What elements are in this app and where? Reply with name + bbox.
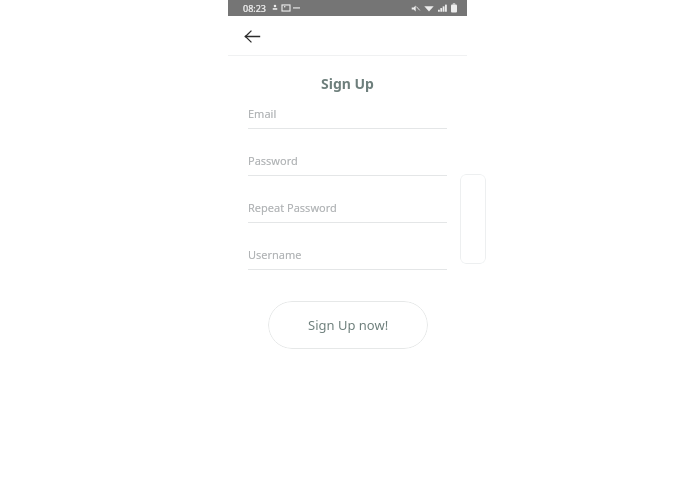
button[interactable]: Password	[248, 153, 447, 176]
staticText: 08:23	[243, 2, 267, 14]
staticText: Sign Up now!	[308, 316, 389, 334]
staticText: Password	[248, 153, 298, 168]
button[interactable]: Repeat Password	[248, 200, 447, 223]
staticText: Email	[248, 106, 277, 121]
staticText: Repeat Password	[248, 200, 337, 215]
button[interactable]: Sign Up now!	[268, 301, 428, 349]
button[interactable]: Back	[236, 20, 268, 52]
button[interactable]: Email	[248, 106, 447, 129]
button[interactable]: Username	[248, 247, 447, 270]
staticText: Username	[248, 247, 302, 262]
staticText: Sign Up	[228, 74, 467, 93]
